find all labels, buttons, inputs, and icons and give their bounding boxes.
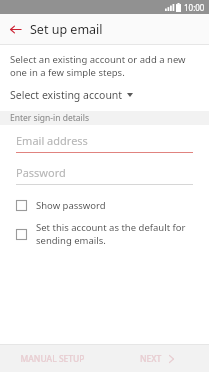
staticText: NEXT [140,353,162,365]
staticText: MANUAL SETUP [20,353,85,365]
staticText: Set up email [30,21,103,38]
button[interactable]: Set this account as the default for send… [16,221,193,247]
staticText: Set this account as the default for send… [36,221,193,247]
button[interactable]: MANUAL SETUP [0,353,104,365]
staticText: Enter sign-in details [10,112,90,124]
button[interactable]: Navigate up [0,14,30,44]
button[interactable]: NEXT [104,353,209,365]
staticText: Email address [16,133,88,148]
staticText: Select an existing account or add a new … [10,53,195,79]
staticText: 10:00 [184,2,205,13]
staticText: Select existing account [10,88,123,102]
button[interactable]: Show password [16,199,193,212]
button[interactable]: Select existing account [10,88,133,102]
staticText: Show password [36,199,106,212]
staticText: Password [16,165,66,180]
